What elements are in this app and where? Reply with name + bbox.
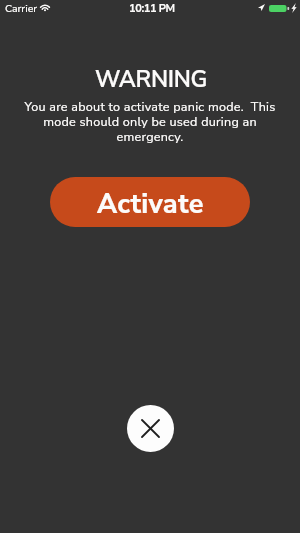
button[interactable]: Close — [127, 405, 174, 452]
staticText: WARNING — [95, 64, 208, 95]
staticText: Activate — [97, 186, 204, 223]
staticText: You are about to activate panic mode. Th… — [21, 98, 279, 146]
button[interactable]: Activate — [50, 177, 250, 227]
staticText: Carrier — [5, 1, 38, 15]
staticText: 10:11 PM — [129, 1, 175, 16]
